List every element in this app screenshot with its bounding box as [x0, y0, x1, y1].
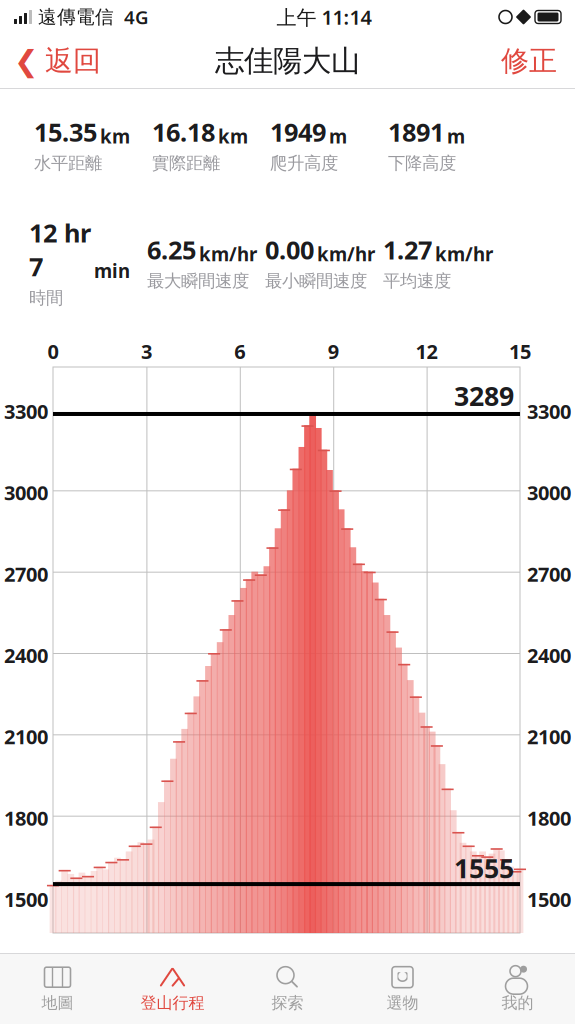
- staticText: 3289: [454, 378, 514, 413]
- staticText: 最大瞬間速度: [147, 270, 249, 292]
- button[interactable]: 我的: [460, 959, 575, 1019]
- staticText: km/hr: [199, 242, 257, 266]
- staticText: 修正: [501, 44, 557, 78]
- staticText: ❮: [14, 44, 39, 78]
- staticText: 2400: [527, 642, 571, 669]
- staticText: 1891: [388, 115, 444, 149]
- staticText: 1.27: [383, 233, 432, 266]
- staticText: 12 hr 7: [29, 216, 91, 283]
- button[interactable]: ❮: [0, 37, 115, 85]
- staticText: km: [100, 124, 130, 149]
- staticText: 2100: [4, 723, 48, 750]
- staticText: 水平距離: [34, 153, 102, 174]
- staticText: 1555: [454, 850, 514, 885]
- staticText: 上午 11:14: [276, 4, 371, 30]
- staticText: 3000: [4, 479, 48, 506]
- button[interactable]: 修正: [483, 37, 575, 85]
- staticText: 實際距離: [152, 153, 220, 174]
- staticText: 爬升高度: [270, 153, 338, 174]
- staticText: min: [94, 258, 130, 283]
- staticText: 3: [141, 338, 152, 365]
- staticText: 選物: [386, 993, 418, 1013]
- staticText: 最小瞬間速度: [265, 270, 367, 292]
- button[interactable]: 選物: [345, 959, 460, 1019]
- staticText: 探索: [271, 993, 303, 1013]
- staticText: km/hr: [317, 242, 375, 266]
- staticText: 6: [234, 338, 245, 365]
- staticText: 志佳陽大山: [215, 43, 360, 79]
- staticText: 2100: [527, 723, 571, 750]
- staticText: 2700: [4, 561, 48, 587]
- staticText: 返回: [45, 44, 101, 78]
- staticText: 16.18: [152, 115, 215, 149]
- staticText: 時間: [29, 287, 63, 308]
- staticText: 0: [47, 338, 58, 365]
- staticText: 15: [509, 338, 531, 365]
- staticText: km: [218, 124, 248, 149]
- staticText: 3300: [4, 398, 48, 425]
- staticText: 2400: [4, 642, 48, 669]
- staticText: 6.25: [147, 233, 196, 266]
- staticText: m: [329, 124, 347, 149]
- button[interactable]: 探索: [230, 959, 345, 1019]
- staticText: km/hr: [435, 242, 493, 266]
- button[interactable]: 登山行程: [115, 959, 230, 1019]
- staticText: m: [447, 124, 465, 149]
- staticText: 9: [328, 338, 339, 365]
- staticText: 2700: [527, 561, 571, 587]
- staticText: 下降高度: [388, 153, 456, 174]
- staticText: 3300: [527, 398, 571, 425]
- staticText: 遠傳電信: [32, 5, 114, 28]
- staticText: 1500: [527, 886, 571, 913]
- staticText: 我的: [501, 993, 533, 1013]
- staticText: 登山行程: [140, 993, 204, 1013]
- staticText: 3000: [527, 479, 571, 506]
- staticText: 地圖: [41, 993, 73, 1013]
- staticText: 1949: [270, 115, 326, 149]
- button[interactable]: 地圖: [0, 959, 115, 1019]
- staticText: 0.00: [265, 233, 314, 266]
- staticText: 15.35: [34, 115, 97, 149]
- staticText: 平均速度: [383, 270, 451, 292]
- staticText: 1800: [527, 805, 571, 831]
- staticText: 1500: [4, 886, 48, 913]
- staticText: 4G: [114, 5, 149, 29]
- staticText: 12: [416, 338, 438, 365]
- staticText: 1800: [4, 805, 48, 831]
